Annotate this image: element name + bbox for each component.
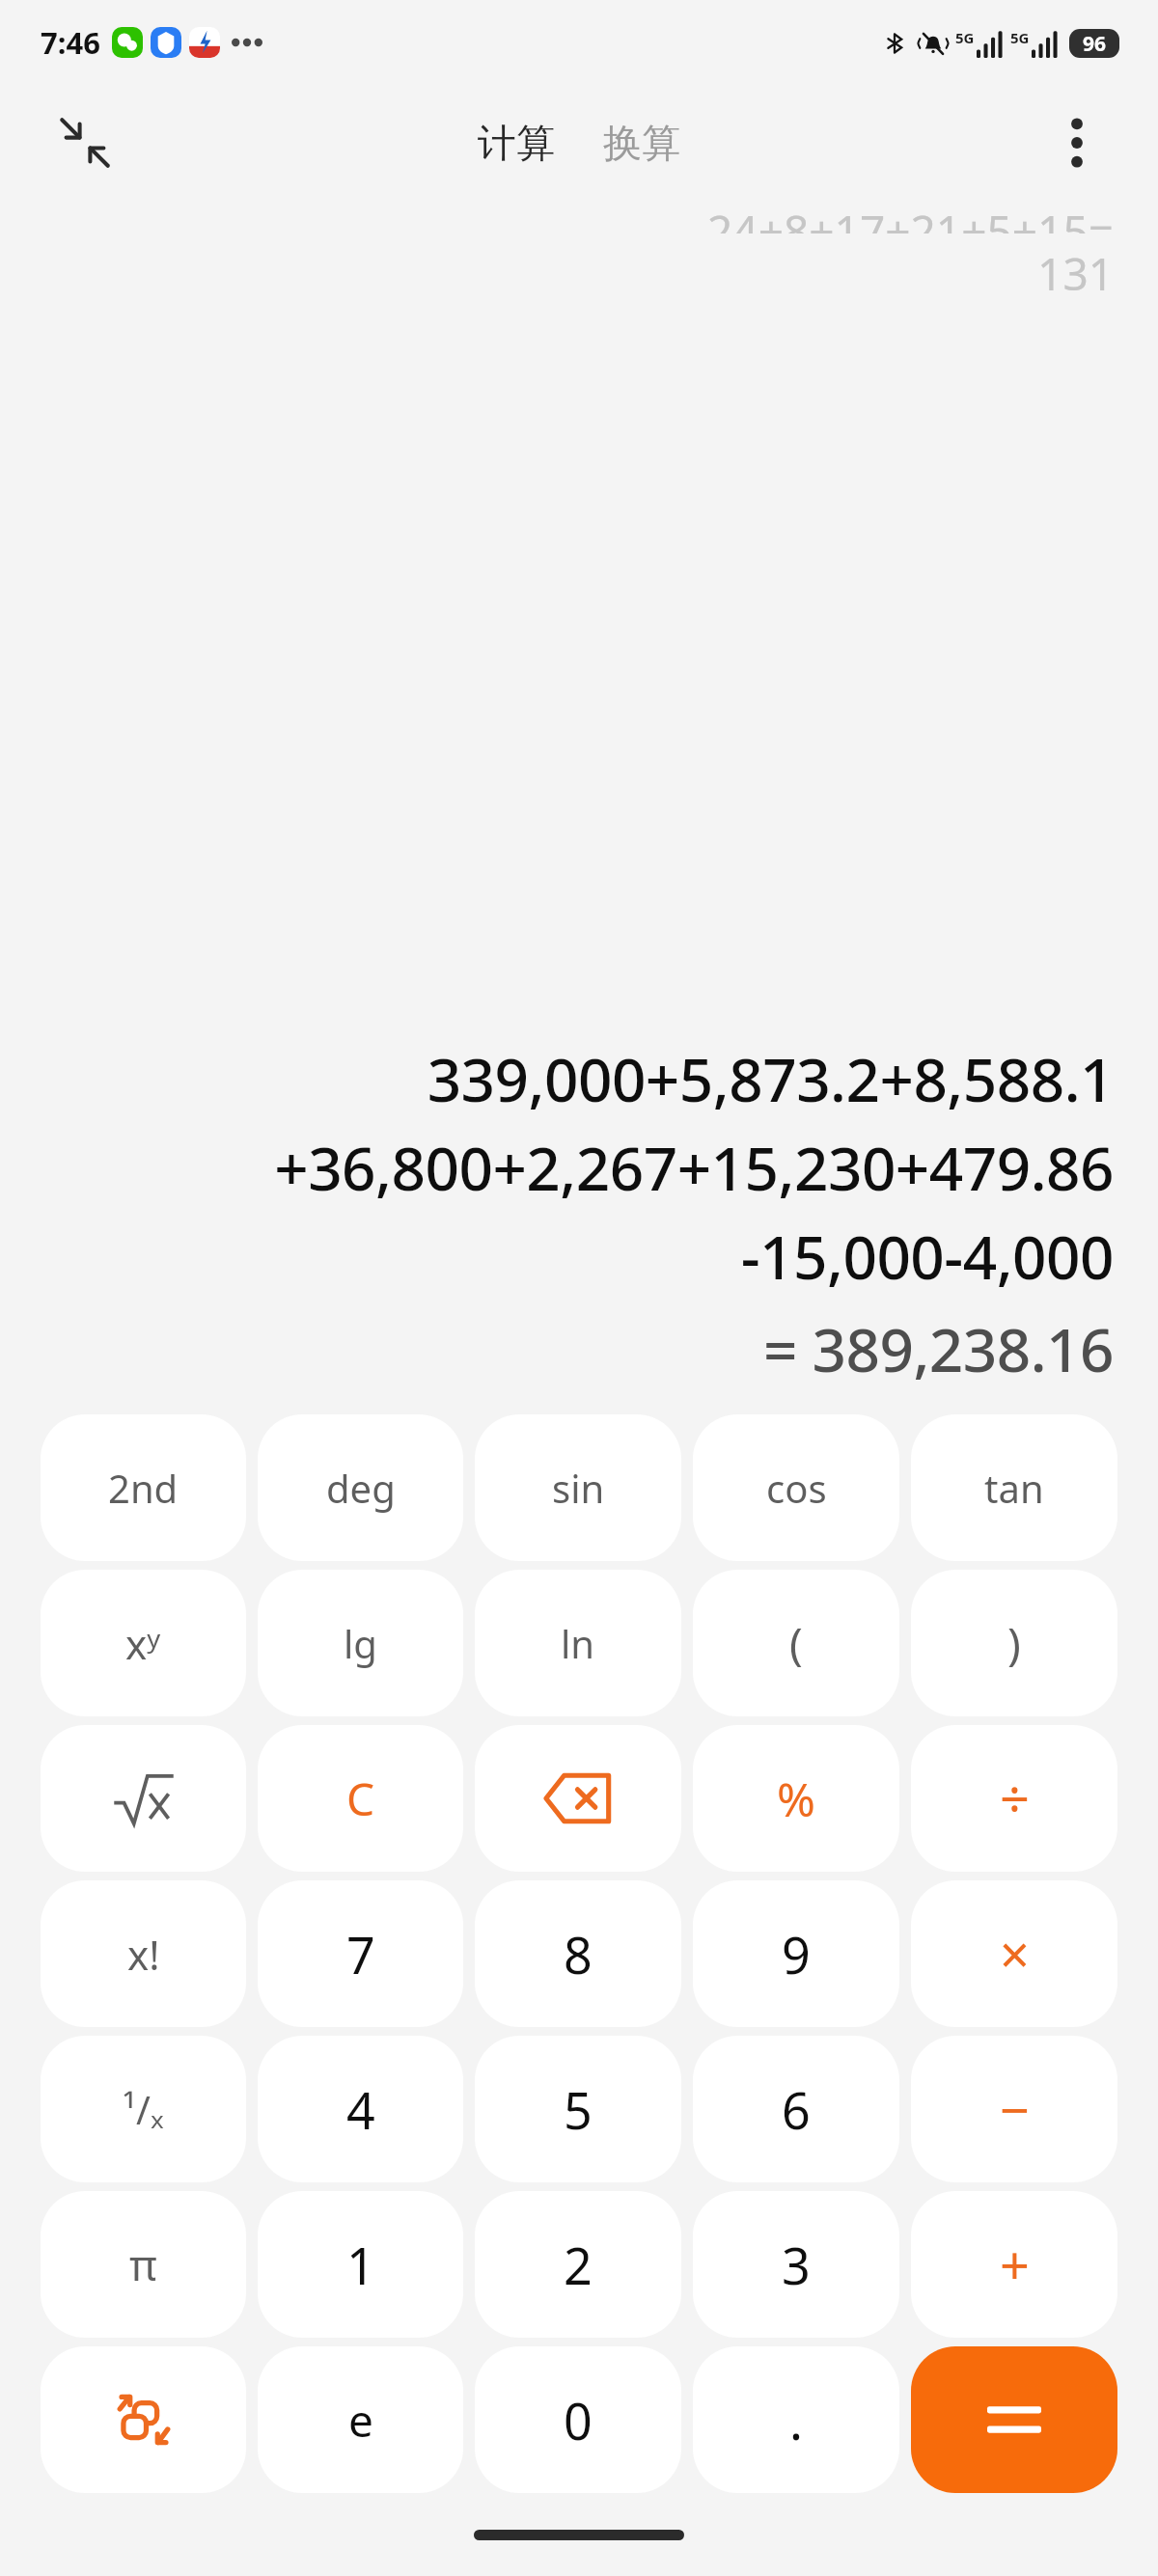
- button[interactable]: x!: [41, 1880, 246, 2027]
- staticText: +: [1000, 2229, 1030, 2300]
- staticText: 4: [346, 2075, 375, 2144]
- staticText: ln: [561, 1617, 595, 1669]
- staticText: cos: [766, 1462, 827, 1514]
- button[interactable]: deg: [258, 1414, 463, 1561]
- staticText: = 389,238.16: [762, 1308, 1114, 1389]
- button[interactable]: 6: [693, 2036, 899, 2182]
- button[interactable]: 2nd: [41, 1414, 246, 1561]
- button[interactable]: ¹/ₓ: [41, 2036, 246, 2182]
- button[interactable]: π: [41, 2191, 246, 2338]
- staticText: 7:46: [41, 22, 100, 63]
- button[interactable]: More options: [1038, 104, 1116, 181]
- staticText: 2nd: [108, 1462, 179, 1514]
- staticText: 5G: [1010, 28, 1030, 47]
- staticText: 2: [564, 2231, 593, 2299]
- staticText: tan: [984, 1462, 1044, 1514]
- staticText: lg: [344, 1617, 377, 1669]
- button[interactable]: ÷: [911, 1725, 1117, 1872]
- staticText: 96: [1083, 30, 1107, 58]
- button[interactable]: lg: [258, 1570, 463, 1716]
- button[interactable]: Equals: [911, 2346, 1117, 2493]
- button[interactable]: (: [693, 1570, 899, 1716]
- staticText: .: [789, 2386, 803, 2454]
- staticText: 5G: [955, 28, 975, 47]
- button[interactable]: 3: [693, 2191, 899, 2338]
- staticText: 131: [1037, 243, 1114, 304]
- button[interactable]: 计算: [470, 113, 563, 173]
- staticText: −: [1000, 2073, 1030, 2145]
- staticText: sin: [552, 1462, 605, 1514]
- staticText: deg: [326, 1462, 396, 1514]
- staticText: 0: [564, 2386, 593, 2454]
- staticText: 计算: [478, 119, 555, 167]
- staticText: 1: [346, 2231, 375, 2299]
- button[interactable]: e: [258, 2346, 463, 2493]
- button[interactable]: 2: [475, 2191, 681, 2338]
- staticText: -15,000-4,000: [740, 1216, 1114, 1297]
- staticText: C: [346, 1768, 375, 1829]
- button[interactable]: 1: [258, 2191, 463, 2338]
- button[interactable]: −: [911, 2036, 1117, 2182]
- button[interactable]: 4: [258, 2036, 463, 2182]
- staticText: 7: [346, 1920, 375, 1988]
- button[interactable]: 9: [693, 1880, 899, 2027]
- button[interactable]: 5: [475, 2036, 681, 2182]
- button[interactable]: sin: [475, 1414, 681, 1561]
- staticText: 8: [564, 1920, 593, 1988]
- button[interactable]: ): [911, 1570, 1117, 1716]
- button[interactable]: Convert: [41, 2346, 246, 2493]
- button[interactable]: Collapse: [46, 104, 124, 181]
- button[interactable]: +: [911, 2191, 1117, 2338]
- button[interactable]: %: [693, 1725, 899, 1872]
- staticText: ÷: [1000, 1763, 1030, 1834]
- button[interactable]: tan: [911, 1414, 1117, 1561]
- staticText: (: [789, 1613, 803, 1674]
- button[interactable]: Square root: [41, 1725, 246, 1872]
- staticText: ¹/ₓ: [123, 2083, 164, 2135]
- staticText: +36,800+2,267+15,230+479.86: [274, 1127, 1114, 1208]
- button[interactable]: xʸ: [41, 1570, 246, 1716]
- staticText: 5: [564, 2075, 593, 2144]
- staticText: 24+8+17+21+5+15=: [707, 201, 1114, 233]
- staticText: 9: [782, 1920, 811, 1988]
- button[interactable]: 换算: [595, 113, 688, 173]
- staticText: 3: [782, 2231, 811, 2299]
- button[interactable]: Backspace: [475, 1725, 681, 1872]
- staticText: 换算: [603, 119, 680, 167]
- staticText: xʸ: [125, 1616, 161, 1671]
- staticText: x!: [127, 1927, 160, 1982]
- staticText: %: [777, 1768, 815, 1830]
- button[interactable]: ×: [911, 1880, 1117, 2027]
- button[interactable]: 0: [475, 2346, 681, 2493]
- staticText: ×: [1000, 1918, 1030, 1989]
- staticText: π: [129, 2235, 157, 2293]
- button[interactable]: 8: [475, 1880, 681, 2027]
- staticText: 339,000+5,873.2+8,588.1: [427, 1038, 1114, 1119]
- button[interactable]: cos: [693, 1414, 899, 1561]
- staticText: e: [348, 2390, 373, 2451]
- staticText: ): [1007, 1613, 1021, 1674]
- button[interactable]: ln: [475, 1570, 681, 1716]
- button[interactable]: Clear: [258, 1725, 463, 1872]
- staticText: 6: [782, 2075, 811, 2144]
- button[interactable]: 7: [258, 1880, 463, 2027]
- button[interactable]: .: [693, 2346, 899, 2493]
